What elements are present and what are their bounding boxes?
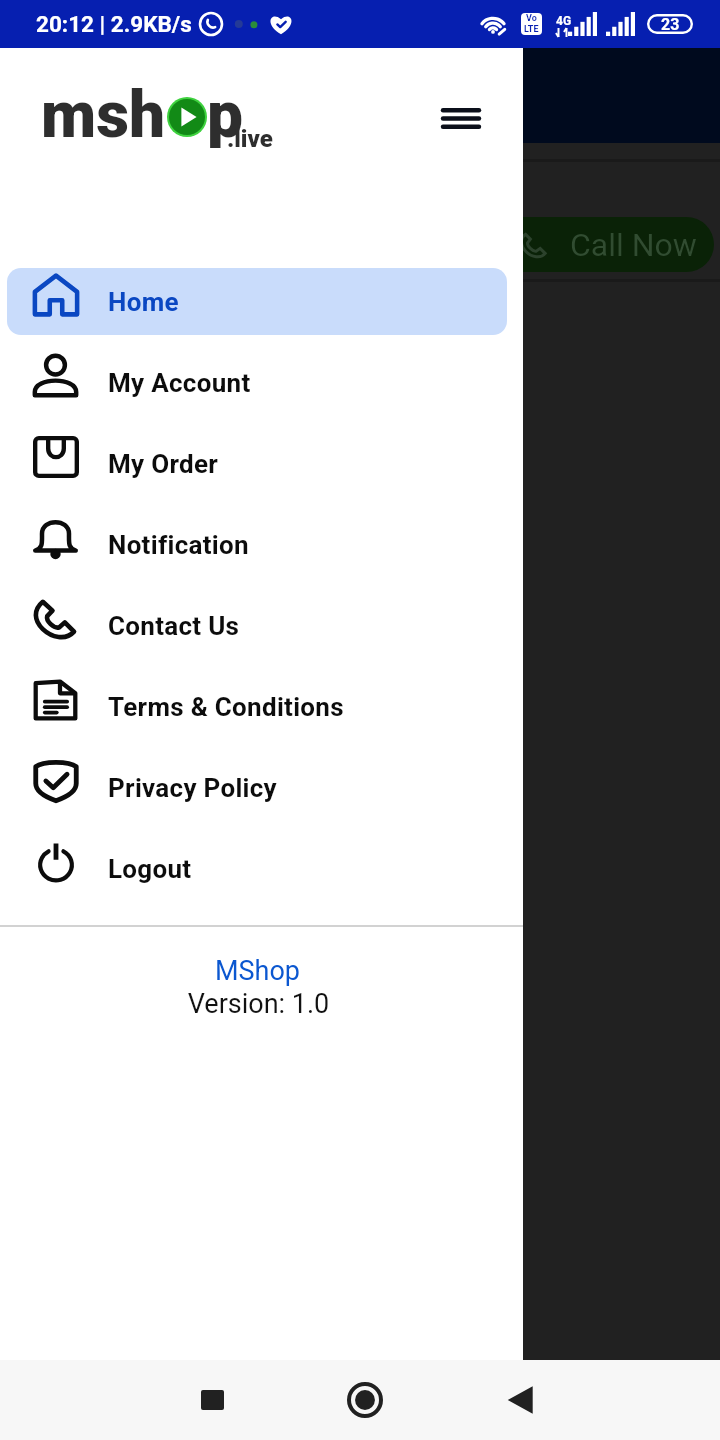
staticText: .live — [227, 125, 273, 153]
button[interactable]: Home — [7, 268, 507, 335]
staticText: Logout — [108, 854, 192, 884]
staticText: Notification — [108, 530, 249, 560]
button[interactable]: My Order — [7, 430, 507, 497]
button[interactable]: Home — [335, 1370, 395, 1430]
staticText: Contact Us — [108, 611, 240, 641]
staticText: Terms & Conditions — [108, 692, 344, 722]
staticText: 4G — [556, 14, 572, 28]
button[interactable]: Open navigation menu — [435, 92, 487, 144]
button[interactable]: Logout — [7, 835, 507, 902]
staticText: Call Now — [570, 226, 697, 264]
staticText: Privacy Policy — [108, 773, 278, 803]
button[interactable]: Recent apps — [182, 1370, 242, 1430]
button[interactable]: Contact Us — [7, 592, 507, 659]
button[interactable]: Call Now — [284, 217, 714, 272]
button[interactable]: Privacy Policy — [7, 754, 507, 821]
button[interactable]: Notification — [7, 511, 507, 578]
button[interactable]: My Account — [7, 349, 507, 416]
staticText: 20:12 | 2.9KB/s — [36, 11, 192, 37]
staticText: p — [207, 78, 244, 148]
staticText: Home — [108, 287, 179, 317]
button[interactable]: Back — [490, 1370, 550, 1430]
staticText: MShop — [0, 955, 519, 987]
staticText: Version: 1.0 — [0, 988, 520, 1020]
staticText: 23 — [661, 15, 680, 34]
staticText: Vo — [526, 13, 537, 24]
staticText: My Account — [108, 368, 251, 398]
staticText: LTE — [524, 24, 539, 35]
button[interactable]: Terms & Conditions — [7, 673, 507, 740]
staticText: msh — [41, 78, 166, 148]
staticText: My Order — [108, 449, 219, 479]
